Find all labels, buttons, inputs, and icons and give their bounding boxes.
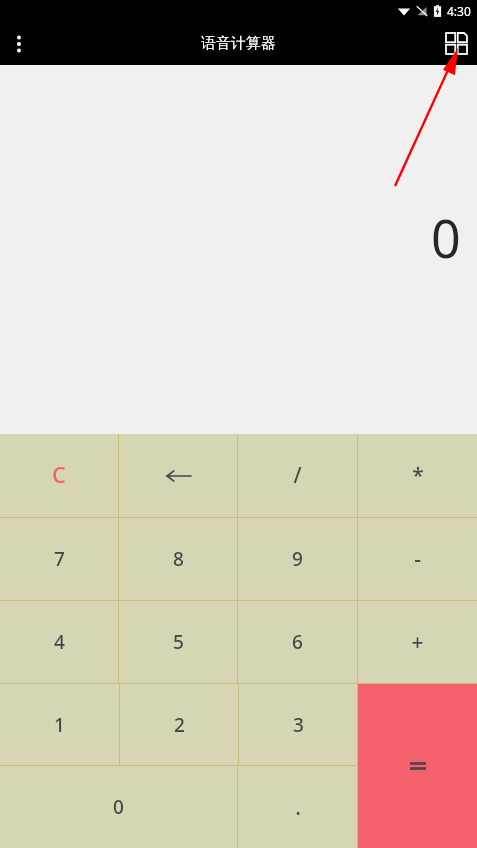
- staticText: 0: [113, 794, 124, 820]
- button[interactable]: Backspace: [119, 434, 237, 517]
- button[interactable]: 3: [239, 684, 357, 765]
- button[interactable]: 2: [120, 684, 238, 765]
- staticText: .: [295, 793, 301, 822]
- staticText: +: [411, 628, 424, 657]
- staticText: /: [293, 461, 302, 490]
- button[interactable]: 9: [238, 518, 357, 600]
- staticText: 7: [54, 546, 65, 572]
- staticText: C: [52, 461, 66, 490]
- button[interactable]: C: [0, 434, 118, 517]
- button[interactable]: 0: [0, 766, 237, 848]
- button[interactable]: +: [358, 601, 477, 683]
- staticText: 3: [293, 712, 304, 738]
- staticText: 1: [54, 712, 65, 738]
- staticText: -: [414, 545, 421, 574]
- button[interactable]: [358, 684, 477, 848]
- button[interactable]: *: [358, 434, 477, 517]
- staticText: 4: [54, 629, 65, 655]
- staticText: 0: [431, 202, 461, 273]
- staticText: 8: [173, 546, 184, 572]
- staticText: 4:30: [447, 3, 471, 19]
- button[interactable]: More options: [0, 22, 38, 65]
- button[interactable]: -: [358, 518, 477, 600]
- staticText: 2: [174, 712, 185, 738]
- staticText: 6: [292, 629, 303, 655]
- button[interactable]: 6: [238, 601, 357, 683]
- button[interactable]: 5: [119, 601, 237, 683]
- button[interactable]: 4: [0, 601, 118, 683]
- button[interactable]: 1: [0, 684, 119, 765]
- button[interactable]: .: [238, 766, 357, 848]
- button[interactable]: Grid view: [435, 22, 477, 65]
- button[interactable]: 7: [0, 518, 118, 600]
- staticText: 5: [173, 629, 184, 655]
- staticText: 语音计算器: [201, 34, 276, 53]
- button[interactable]: /: [238, 434, 357, 517]
- staticText: *: [412, 461, 424, 490]
- button[interactable]: 8: [119, 518, 237, 600]
- staticText: 9: [292, 546, 303, 572]
